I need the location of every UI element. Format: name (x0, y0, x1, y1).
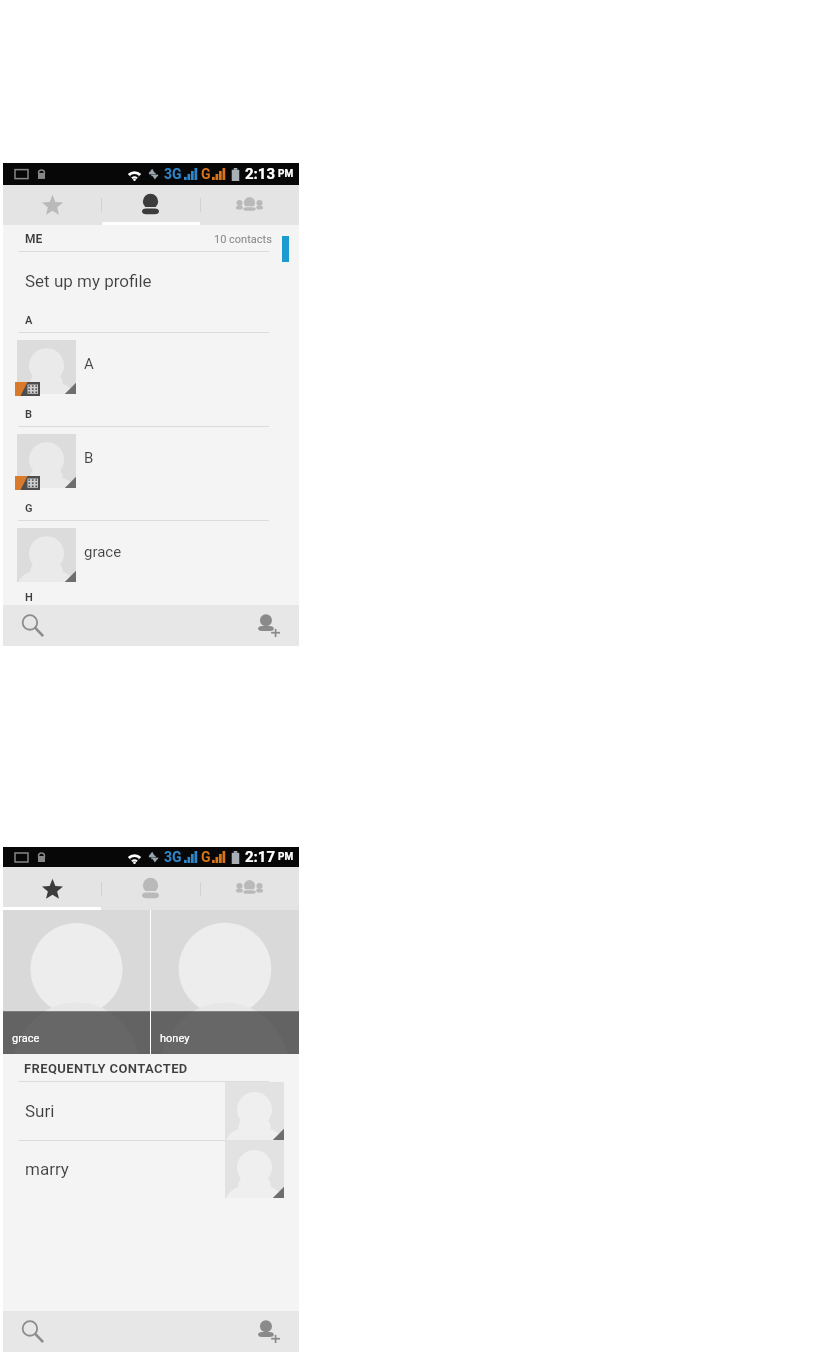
button[interactable]: Contacts (101, 867, 200, 910)
staticText: Suri (25, 1101, 55, 1121)
staticText: G (201, 166, 211, 182)
button[interactable]: grace (3, 521, 299, 590)
staticText: 2:17 (245, 848, 276, 866)
button[interactable]: honey (151, 910, 299, 1054)
button[interactable]: Groups (200, 867, 299, 910)
staticText: G (201, 849, 211, 865)
button[interactable]: A (3, 333, 299, 402)
staticText: 3G (164, 166, 182, 182)
button[interactable]: Contacts (101, 185, 200, 225)
button[interactable]: Search (18, 1317, 48, 1347)
button[interactable]: grace (3, 910, 150, 1054)
staticText: ME (25, 232, 43, 246)
button[interactable]: marry (3, 1140, 299, 1198)
button[interactable]: Add contact (252, 1317, 282, 1347)
button[interactable]: ME (3, 225, 299, 253)
staticText: A (84, 355, 94, 373)
button[interactable]: B (3, 427, 299, 496)
button[interactable]: Search (18, 611, 48, 641)
button[interactable]: Set up my profile (3, 253, 299, 308)
staticText: honey (160, 1032, 190, 1045)
staticText: marry (25, 1159, 69, 1179)
staticText: Set up my profile (25, 271, 152, 291)
button[interactable]: Favorites (3, 867, 101, 910)
button[interactable]: Groups (200, 185, 299, 225)
button[interactable]: Add contact (252, 611, 282, 641)
staticText: 3G (164, 849, 182, 865)
staticText: 10 contacts (214, 233, 272, 246)
staticText: G (25, 502, 33, 515)
staticText: grace (84, 543, 122, 561)
staticText: H (25, 591, 33, 604)
staticText: PM (278, 851, 294, 863)
staticText: PM (278, 168, 294, 180)
staticText: grace (12, 1032, 40, 1045)
button[interactable]: Suri (3, 1082, 299, 1140)
staticText: B (84, 449, 94, 467)
button[interactable]: Favorites (3, 185, 101, 225)
staticText: FREQUENTLY CONTACTED (24, 1061, 188, 1076)
staticText: B (25, 408, 33, 421)
staticText: A (25, 314, 33, 327)
staticText: 2:13 (245, 165, 276, 183)
